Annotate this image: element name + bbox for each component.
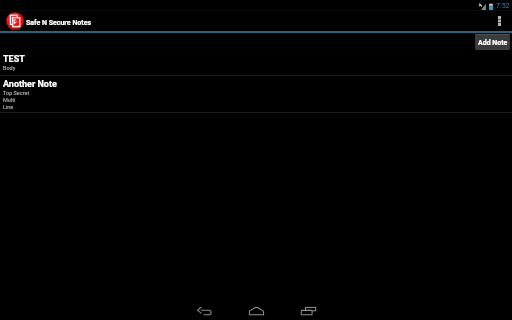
button[interactable]: Add Note: [475, 34, 510, 50]
staticText: Multi: [3, 97, 16, 104]
staticText: Line: [3, 104, 14, 111]
button[interactable]: TEST: [0, 50, 512, 75]
button[interactable]: Another Note: [0, 76, 512, 112]
button[interactable]: Back: [181, 294, 227, 320]
staticText: Body: [3, 65, 16, 72]
staticText: Another Note: [3, 79, 57, 90]
staticText: TEST: [3, 54, 25, 65]
button[interactable]: Home: [233, 294, 279, 320]
staticText: Safe N Secure Notes: [26, 19, 92, 27]
button[interactable]: Recent apps: [285, 294, 331, 320]
staticText: Add Note: [478, 39, 508, 47]
staticText: 7:52: [496, 2, 510, 10]
button[interactable]: More options: [487, 11, 512, 31]
staticText: Top Secret: [3, 90, 30, 97]
